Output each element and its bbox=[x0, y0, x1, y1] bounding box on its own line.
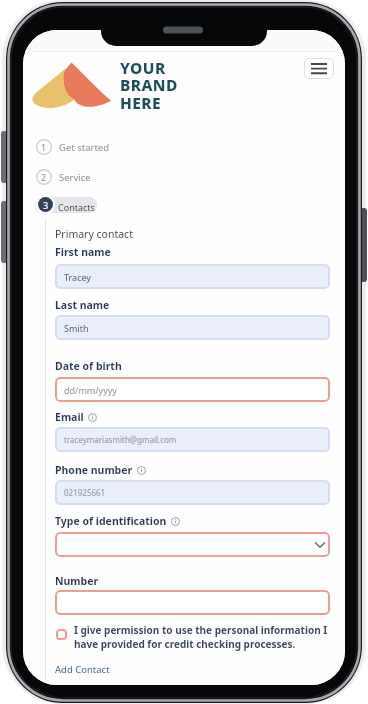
staticText: Tracey bbox=[64, 271, 91, 283]
button[interactable]: 021925661 bbox=[55, 480, 330, 505]
staticText: Primary contact bbox=[55, 227, 133, 241]
staticText: I give permission to use the personal in… bbox=[74, 623, 328, 651]
staticText: 1 bbox=[41, 141, 47, 153]
staticText: Service bbox=[59, 171, 91, 184]
button[interactable]: traceymariasmith@gmail.com bbox=[55, 427, 330, 452]
staticText: dd/mm/yyyy bbox=[64, 384, 117, 396]
staticText: Contacts bbox=[58, 201, 95, 213]
staticText: Number bbox=[55, 574, 99, 588]
button[interactable]: I give permission to use the personal in… bbox=[55, 623, 328, 651]
staticText: Get started bbox=[59, 141, 110, 154]
button[interactable] bbox=[55, 590, 330, 615]
button[interactable]: 1 bbox=[36, 139, 110, 155]
staticText: Email bbox=[55, 410, 84, 424]
staticText: YOUR BRAND HERE bbox=[120, 57, 178, 114]
staticText: Date of birth bbox=[55, 359, 122, 373]
button[interactable]: Smith bbox=[55, 315, 330, 340]
staticText: Phone number bbox=[55, 463, 133, 477]
staticText: Type of identification bbox=[55, 514, 167, 528]
staticText: Last name bbox=[55, 298, 110, 312]
button[interactable] bbox=[55, 532, 330, 557]
button[interactable]: Add Contact bbox=[55, 663, 110, 676]
button[interactable]: dd/mm/yyyy bbox=[55, 377, 330, 402]
button[interactable] bbox=[304, 58, 334, 79]
staticText: 3 bbox=[43, 199, 49, 211]
staticText: traceymariasmith@gmail.com bbox=[64, 434, 177, 445]
staticText: 021925661 bbox=[64, 487, 106, 498]
staticText: First name bbox=[55, 245, 111, 259]
staticText: 2 bbox=[41, 171, 47, 183]
button[interactable]: Tracey bbox=[55, 264, 330, 289]
button[interactable]: 2 bbox=[36, 169, 91, 185]
staticText: Smith bbox=[64, 322, 89, 334]
button[interactable] bbox=[35, 197, 97, 213]
